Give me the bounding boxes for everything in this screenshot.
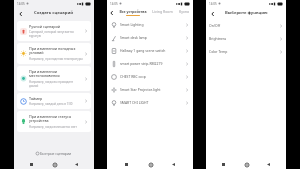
button[interactable]: При изменении погодных условий <box>17 43 91 64</box>
staticText: 14:05 <box>209 2 217 6</box>
button[interactable]: Все устройства <box>116 7 149 18</box>
button[interactable]: Hallway 1 gang scene switch <box>107 44 193 57</box>
staticText: При изменении местоположения <box>29 69 83 79</box>
staticText: 14:05 <box>17 2 25 6</box>
staticText: Все устройства <box>119 9 147 14</box>
staticText: SMART CHI LIGHT <box>120 100 185 105</box>
button[interactable]: Recents <box>122 160 131 169</box>
staticText: Создать сценарий <box>34 10 74 16</box>
staticText: Кухня <box>179 9 189 14</box>
button[interactable]: Кухня <box>175 7 193 18</box>
button[interactable]: Back <box>72 160 81 169</box>
staticText: Например, когда включается свет <box>29 125 77 129</box>
staticText: 14:05 <box>110 2 118 6</box>
staticText: Таймер <box>29 96 43 101</box>
button[interactable]: On/Off <box>206 19 286 32</box>
button[interactable]: Recents <box>219 160 228 169</box>
staticText: Smart Lighting <box>120 22 185 27</box>
staticText: Smart desk lamp <box>120 35 185 40</box>
button[interactable]: Ручной сценарий <box>17 21 91 41</box>
button[interactable]: Smart desk lamp <box>107 31 193 44</box>
button[interactable]: При изменении статуса устройства <box>17 111 91 132</box>
staticText: Smart Star Projector-light <box>120 87 185 92</box>
button[interactable]: CHEST RBC occp <box>107 70 193 83</box>
button[interactable]: Recents <box>27 160 36 169</box>
staticText: Ручной сценарий <box>29 24 61 29</box>
button[interactable]: Smart Lighting <box>107 18 193 31</box>
staticText: Сценарий, который запускается вручную <box>29 30 83 38</box>
button[interactable]: Smart Star Projector-light <box>107 83 193 96</box>
staticText: Living Room <box>152 9 173 14</box>
button[interactable]: Таймер <box>17 93 91 109</box>
button[interactable]: Home <box>50 160 59 169</box>
button[interactable]: Home <box>146 160 155 169</box>
staticText: Например, при падении температуры <box>29 57 83 61</box>
button[interactable]: Back <box>208 9 217 18</box>
staticText: Быстрые сценарии <box>40 151 72 156</box>
staticText: Color Temp <box>209 49 279 54</box>
staticText: Hallway 1 gang scene switch <box>120 48 185 53</box>
staticText: Brightness <box>209 36 279 41</box>
button[interactable]: Back <box>16 9 25 18</box>
button[interactable]: Back <box>169 160 178 169</box>
button[interactable]: При изменении местоположения <box>17 66 91 91</box>
staticText: При изменении статуса устройства <box>29 114 83 124</box>
staticText: Выберите функцию <box>225 10 268 16</box>
staticText: On/Off <box>209 23 279 28</box>
button[interactable]: Color Temp <box>206 45 286 58</box>
button[interactable]: Home <box>242 160 251 169</box>
button[interactable]: Быстрые сценарии <box>14 147 94 159</box>
staticText: Например, каждый день в 7:00 <box>29 102 73 106</box>
staticText: smart power strip-RM2279 <box>120 61 185 66</box>
staticText: При изменении погодных условий <box>29 46 83 56</box>
button[interactable]: Back <box>107 8 116 17</box>
button[interactable]: smart power strip-RM2279 <box>107 57 193 70</box>
button[interactable]: Living Room <box>149 7 175 18</box>
button[interactable]: Back <box>264 160 273 169</box>
button[interactable]: SMART CHI LIGHT <box>107 96 193 109</box>
staticText: CHEST RBC occp <box>120 74 185 79</box>
button[interactable]: Brightness <box>206 32 286 45</box>
staticText: Например, когда вы приходите домой <box>29 80 83 88</box>
